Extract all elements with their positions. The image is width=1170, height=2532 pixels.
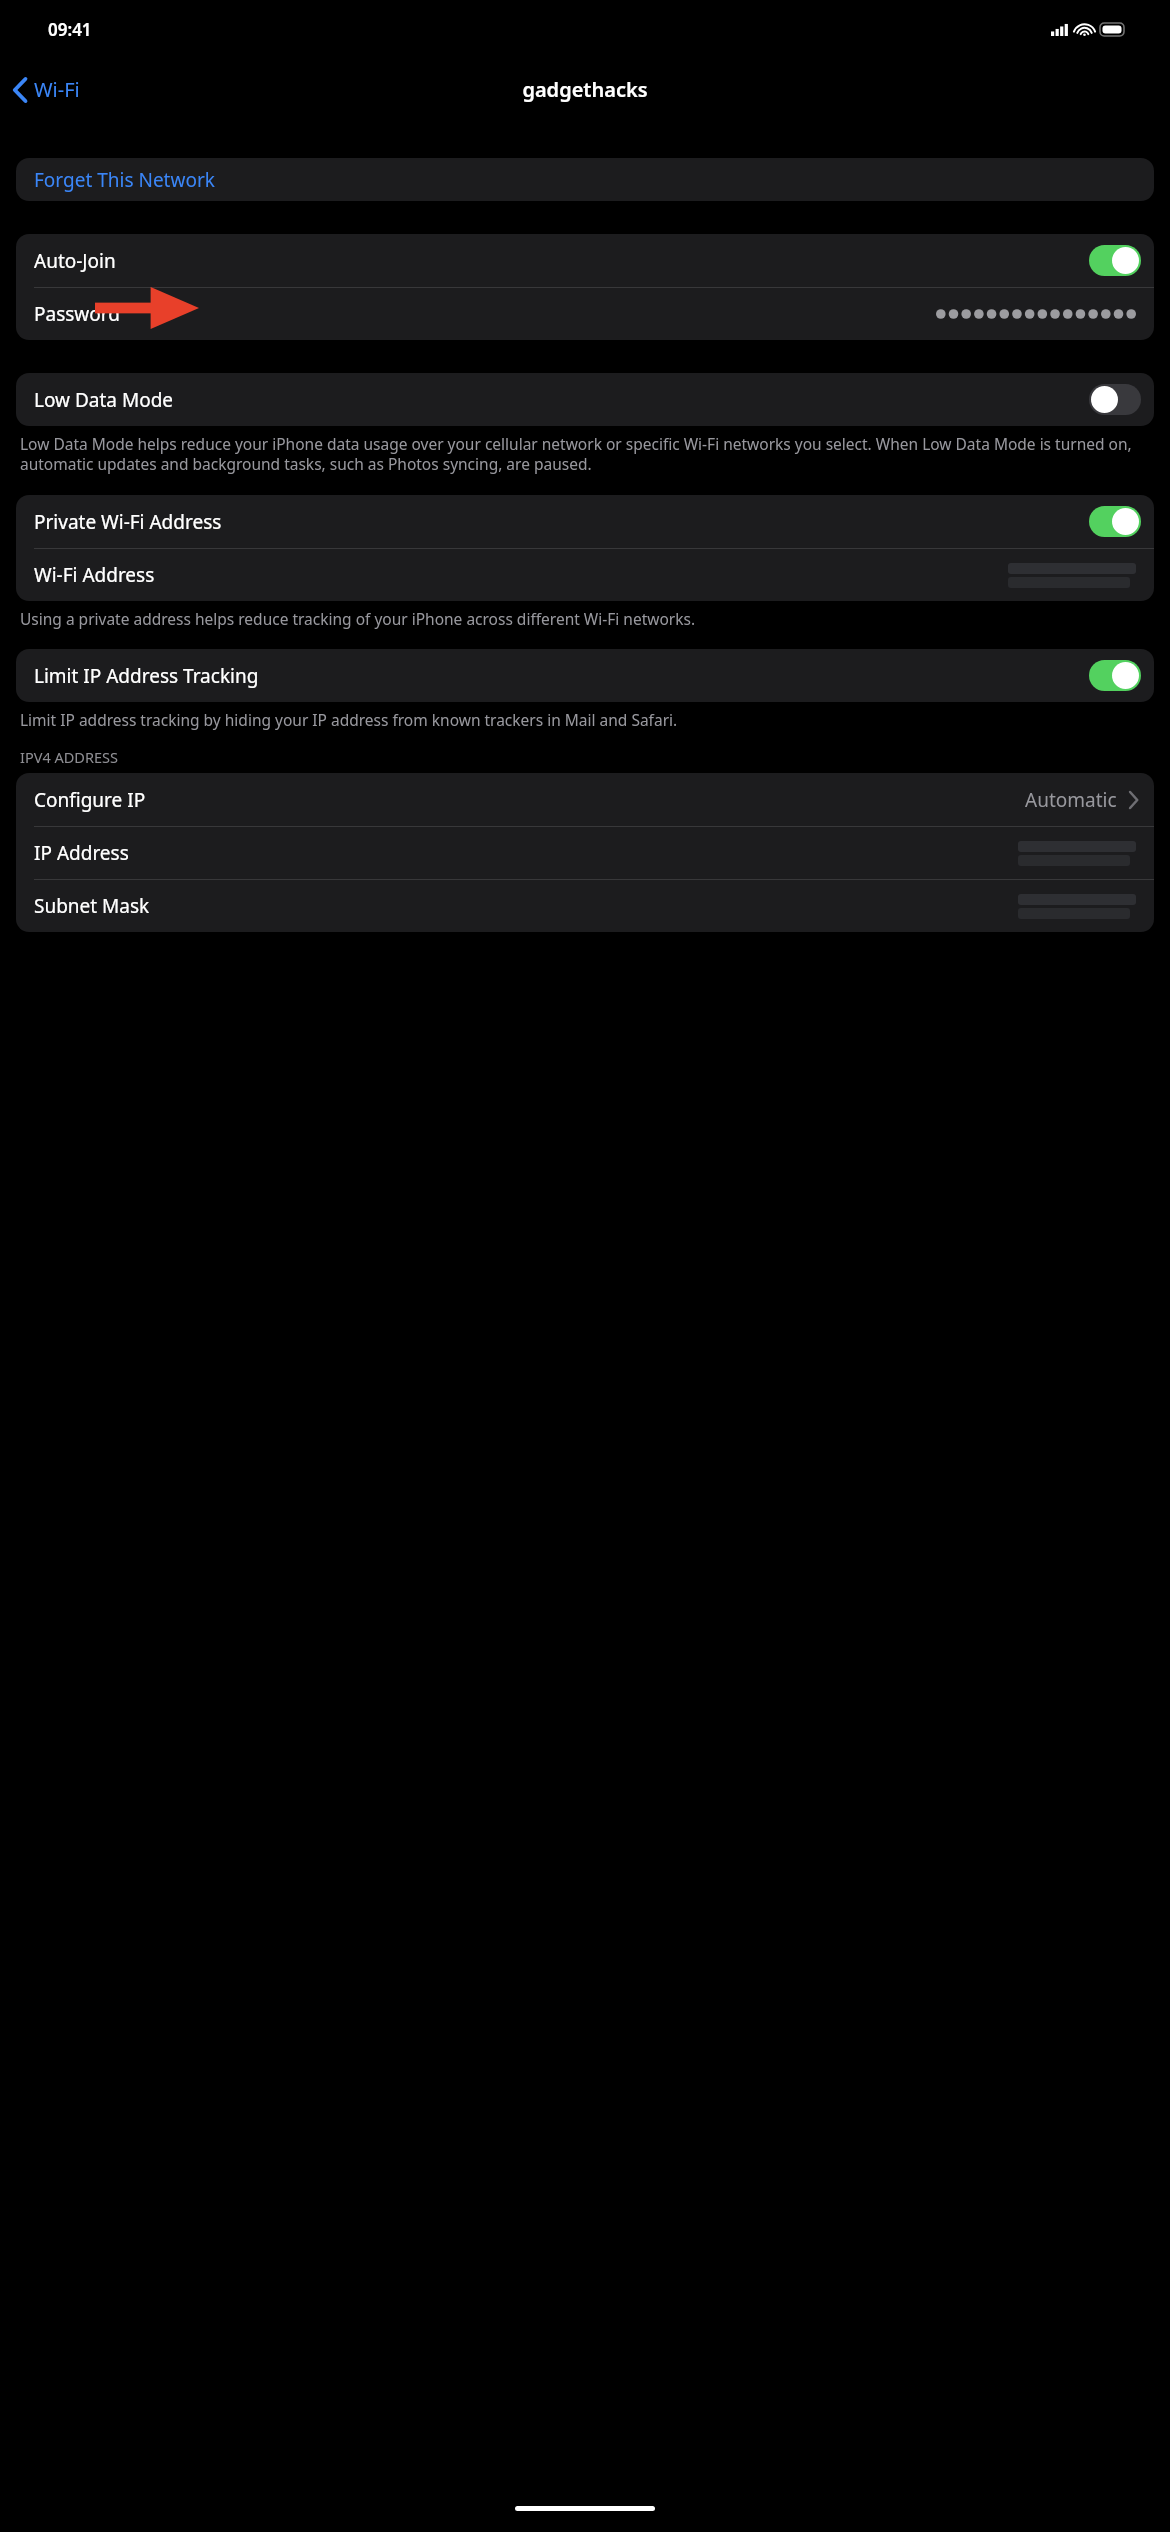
button[interactable]: Low Data Mode xyxy=(16,373,1154,426)
staticText: Configure IP xyxy=(34,787,146,813)
button[interactable]: Configure IP xyxy=(16,773,1154,826)
button[interactable]: Forget This Network xyxy=(16,158,1154,201)
staticText: Limit IP Address Tracking xyxy=(34,663,259,689)
button[interactable]: Auto-Join xyxy=(16,234,1154,287)
button[interactable]: Auto-Join xyxy=(1089,245,1141,276)
button[interactable]: Limit IP Address Tracking xyxy=(16,649,1154,702)
button[interactable]: Wi-Fi Address xyxy=(16,549,1154,601)
staticText: gadgethacks xyxy=(522,76,648,103)
staticText: Auto-Join xyxy=(34,248,116,274)
staticText: 09:41 xyxy=(48,18,92,41)
button[interactable]: Limit IP Address Tracking xyxy=(1089,660,1141,691)
button[interactable]: Subnet Mask xyxy=(16,880,1154,932)
staticText: Limit IP address tracking by hiding your… xyxy=(20,709,678,730)
button[interactable]: Private Wi-Fi Address xyxy=(16,495,1154,548)
staticText: Wi-Fi Address xyxy=(34,562,155,588)
button[interactable]: Password xyxy=(16,288,1154,340)
staticText: Using a private address helps reduce tra… xyxy=(20,608,696,629)
staticText: Subnet Mask xyxy=(34,893,150,919)
button[interactable]: Low Data Mode xyxy=(1089,384,1141,415)
staticText: Low Data Mode helps reduce your iPhone d… xyxy=(20,433,1148,475)
button[interactable]: Wi-Fi xyxy=(0,70,90,109)
staticText: Automatic xyxy=(1025,787,1117,813)
staticText: Password xyxy=(34,301,120,327)
button[interactable]: IP Address xyxy=(16,827,1154,879)
staticText: Wi-Fi xyxy=(34,76,80,103)
button[interactable]: Private Wi-Fi Address xyxy=(1089,506,1141,537)
staticText: Private Wi-Fi Address xyxy=(34,509,222,535)
staticText: Low Data Mode xyxy=(34,387,174,413)
staticText: IPV4 ADDRESS xyxy=(20,747,118,767)
staticText: Forget This Network xyxy=(34,167,215,193)
staticText: IP Address xyxy=(34,840,129,866)
